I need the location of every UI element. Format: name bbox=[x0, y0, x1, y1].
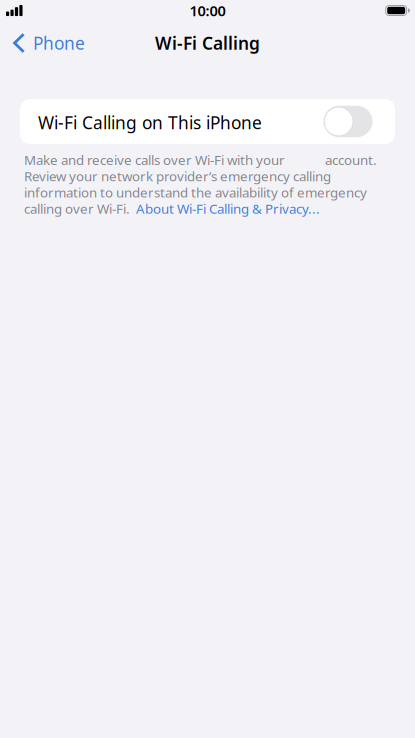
staticText: information to understand the availabili… bbox=[24, 183, 367, 201]
button[interactable]: Phone bbox=[0, 25, 95, 61]
staticText: Wi-Fi Calling bbox=[155, 31, 260, 54]
staticText: Review your network provider’s emergency… bbox=[24, 167, 331, 185]
staticText: Phone bbox=[33, 31, 85, 54]
staticText: About Wi-Fi Calling & Privacy... bbox=[136, 200, 320, 217]
staticText: account. bbox=[325, 151, 377, 169]
staticText: Make and receive calls over Wi-Fi with y… bbox=[24, 151, 285, 169]
button[interactable]: Wi-Fi Calling on This iPhone bbox=[20, 99, 395, 144]
staticText: Wi-Fi Calling on This iPhone bbox=[38, 111, 262, 134]
staticText: 10:00 bbox=[189, 1, 225, 20]
button[interactable]: About Wi-Fi Calling & Privacy... bbox=[136, 200, 320, 217]
staticText: calling over Wi-Fi. bbox=[24, 200, 130, 217]
